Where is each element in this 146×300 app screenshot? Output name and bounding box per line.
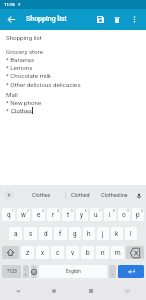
button[interactable]: Backspace	[126, 246, 144, 259]
staticText: 3	[42, 209, 44, 213]
button[interactable]: l	[125, 227, 137, 240]
staticText: k	[115, 230, 119, 238]
staticText: 1	[12, 209, 14, 213]
staticText: v	[71, 249, 75, 257]
button[interactable]: u	[90, 208, 102, 221]
staticText: p	[136, 211, 140, 219]
staticText: e	[37, 211, 41, 219]
staticText: m	[115, 249, 121, 257]
button[interactable]: m	[111, 246, 124, 259]
button[interactable]: c	[51, 246, 64, 259]
button[interactable]: Home	[36, 282, 72, 300]
staticText: Clothes	[11, 107, 32, 114]
staticText: Shopping list	[6, 34, 42, 41]
staticText: a	[14, 230, 18, 238]
button[interactable]: Save	[92, 11, 109, 28]
staticText: * New phone	[6, 99, 42, 106]
button[interactable]: s	[24, 227, 37, 240]
button[interactable]: Clothesline	[96, 185, 132, 205]
staticText: q	[7, 211, 11, 219]
staticText: 6	[85, 209, 87, 213]
button[interactable]: g	[69, 227, 81, 240]
staticText: w	[21, 211, 26, 219]
button[interactable]: i	[104, 208, 116, 221]
button[interactable]: k	[111, 227, 123, 240]
staticText: 9	[127, 209, 129, 213]
staticText: z	[26, 249, 30, 257]
staticText: h	[87, 230, 91, 238]
staticText: d	[44, 230, 48, 238]
staticText: f	[59, 230, 62, 238]
button[interactable]: z	[21, 246, 34, 259]
staticText: c	[56, 249, 60, 257]
staticText: 4	[57, 209, 59, 213]
button[interactable]: t	[62, 208, 74, 221]
staticText: s	[29, 230, 33, 238]
staticText: ,	[25, 270, 27, 276]
button[interactable]: ?123	[2, 265, 21, 278]
button[interactable]: v	[66, 246, 79, 259]
staticText: g	[73, 230, 77, 238]
button[interactable]: e	[32, 208, 45, 221]
staticText: Clothed	[71, 192, 90, 198]
staticText: y	[80, 211, 84, 219]
button[interactable]: o	[118, 208, 130, 221]
staticText: t	[67, 211, 70, 219]
staticText: ?123	[7, 269, 17, 274]
staticText: °	[25, 268, 27, 272]
staticText: x	[41, 249, 45, 257]
button[interactable]: Delete	[108, 11, 125, 28]
staticText: Mall	[6, 91, 18, 98]
staticText: 11:15	[4, 2, 15, 7]
staticText: * Bananas	[6, 56, 35, 63]
button[interactable]: h	[83, 227, 95, 240]
staticText: r	[52, 211, 55, 219]
staticText: * Lemons	[6, 64, 33, 71]
button[interactable]: Recents	[72, 282, 109, 300]
staticText: 0	[141, 209, 143, 213]
button[interactable]: Voice input	[133, 190, 144, 201]
staticText: * Other delicious delicacies	[6, 81, 81, 88]
staticText: English	[66, 269, 81, 274]
staticText: 5	[71, 209, 73, 213]
button[interactable]: Comma	[23, 265, 29, 278]
button[interactable]: Hide keyboard	[109, 282, 146, 300]
button[interactable]: Emoji	[31, 265, 37, 278]
staticText: *	[6, 107, 11, 114]
staticText: Clothesline	[101, 192, 128, 198]
button[interactable]: Enter	[118, 265, 144, 278]
button[interactable]: a	[9, 227, 22, 240]
button[interactable]: Period	[109, 265, 116, 278]
staticText: Clothes	[32, 192, 51, 198]
button[interactable]: r	[47, 208, 60, 221]
staticText: u	[94, 211, 98, 219]
staticText: i	[109, 211, 111, 219]
button[interactable]: d	[39, 227, 52, 240]
button[interactable]: f	[54, 227, 67, 240]
button[interactable]: Clothes	[20, 185, 62, 205]
button[interactable]: x	[36, 246, 49, 259]
button[interactable]: More suggestions	[4, 190, 14, 200]
button[interactable]: Back	[0, 282, 36, 300]
staticText: * Chocolate milk	[6, 72, 52, 79]
button[interactable]: More options	[126, 11, 143, 28]
staticText: o	[122, 211, 126, 219]
staticText: 2	[27, 209, 29, 213]
button[interactable]: Back	[2, 10, 21, 29]
button[interactable]: y	[76, 208, 88, 221]
button[interactable]: n	[96, 246, 109, 259]
button[interactable]: English	[39, 265, 107, 278]
button[interactable]: q	[2, 208, 15, 221]
button[interactable]: Shift	[2, 246, 19, 259]
button[interactable]: b	[81, 246, 94, 259]
button[interactable]: p	[132, 208, 144, 221]
button[interactable]: w	[17, 208, 30, 221]
staticText: l	[130, 230, 132, 238]
button[interactable]: Clothed	[66, 185, 94, 205]
staticText: Grocery store	[6, 48, 43, 55]
staticText: j	[102, 230, 104, 238]
button[interactable]: j	[97, 227, 109, 240]
staticText: 8	[113, 209, 115, 213]
staticText: Shopping list	[26, 15, 67, 23]
staticText: .	[112, 270, 114, 276]
